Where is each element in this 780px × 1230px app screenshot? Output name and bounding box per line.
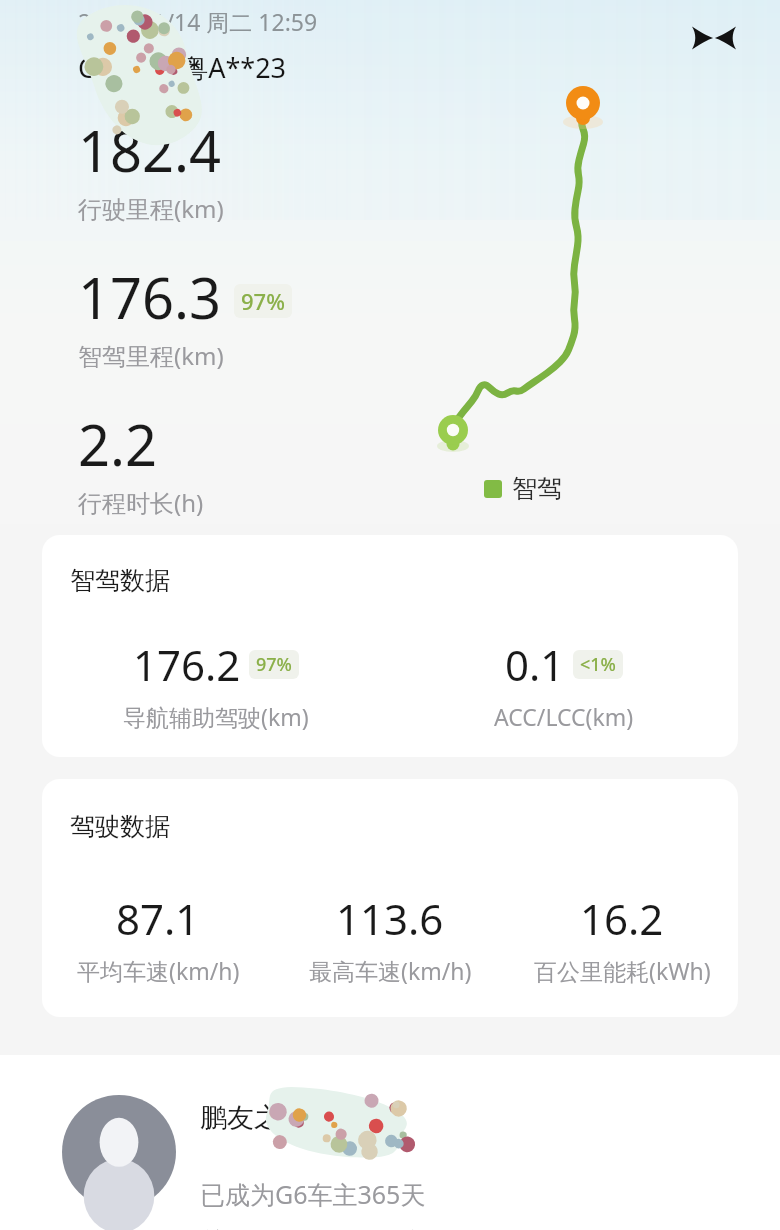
staticText: 已成为G6车主365天 <box>200 1177 426 1211</box>
staticText: 176.3 <box>78 259 222 335</box>
staticText: 百公里能耗(kWh) <box>534 955 711 986</box>
staticText: 0.1 <box>505 636 565 693</box>
staticText: 智驾 <box>512 473 562 504</box>
staticText: G6 鹏友 粤A**23 <box>78 49 287 86</box>
staticText: 导航辅助驾驶(km) <box>123 701 309 732</box>
staticText: 182.4 <box>78 112 222 188</box>
button[interactable]: 鹏友之家 <box>62 1095 617 1230</box>
staticText: 行驶里程(km) <box>78 192 224 225</box>
staticText: 行程时长(h) <box>78 486 204 519</box>
staticText: 2.2 <box>78 406 158 482</box>
staticText: ACC/LCC(km) <box>494 701 634 732</box>
button[interactable]: 智驾数据 <box>42 535 738 757</box>
staticText: 智驾数据 <box>70 565 170 596</box>
staticText: 16.2 <box>580 890 664 947</box>
staticText: 113.6 <box>336 890 444 947</box>
staticText: 87.1 <box>116 890 200 947</box>
staticText: 驾驶数据 <box>70 811 170 842</box>
staticText: 176.2 <box>133 636 241 693</box>
staticText: 平均车速(km/h) <box>77 955 240 986</box>
staticText: 97% <box>256 652 292 677</box>
staticText: 智驾里程(km) <box>78 339 224 372</box>
button[interactable]: 驾驶数据 <box>42 779 738 1017</box>
staticText: 最高车速(km/h) <box>309 955 472 986</box>
staticText: 97% <box>241 286 285 316</box>
staticText: 鹏友之家 <box>200 1101 308 1135</box>
staticText: <1% <box>580 652 616 677</box>
staticText: 2025/01/14 周二 12:59 <box>78 6 318 37</box>
button[interactable]: XPeng logo <box>690 18 738 58</box>
